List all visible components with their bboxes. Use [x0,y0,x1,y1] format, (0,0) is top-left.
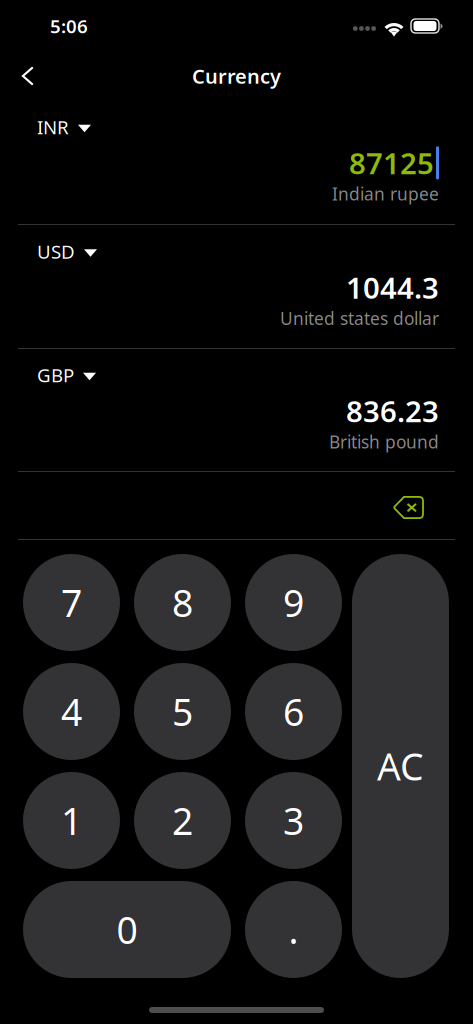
staticText: 0 [116,905,137,954]
button[interactable]: . [245,881,342,978]
button[interactable]: INR [31,111,97,143]
staticText: Indian rupee [332,182,439,205]
staticText: Currency [192,63,281,89]
staticText: 87125 [349,143,434,182]
staticText: 5 [172,687,193,736]
staticText: GBP [37,363,74,387]
staticText: 7 [61,578,82,627]
staticText: 5:06 [50,14,88,38]
staticText: USD [37,239,75,264]
button[interactable]: GBP [31,359,102,391]
staticText: INR [37,115,69,139]
button[interactable]: 5 [134,663,231,760]
staticText: 9 [283,578,304,627]
button[interactable]: 2 [134,772,231,869]
button[interactable]: 0 [23,881,231,978]
staticText: United states dollar [280,307,439,330]
button[interactable]: 8 [134,554,231,651]
staticText: 2 [172,796,193,845]
button[interactable]: Delete [383,485,434,529]
staticText: 3 [283,796,304,845]
staticText: 8 [172,578,193,627]
button[interactable]: 9 [245,554,342,651]
button[interactable]: 6 [245,663,342,760]
button[interactable]: 3 [245,772,342,869]
staticText: 836.23 [346,391,439,430]
staticText: 6 [283,687,304,736]
button[interactable]: Back [5,54,49,98]
button[interactable]: 4 [23,663,120,760]
button[interactable]: USD [31,235,103,268]
button[interactable]: 7 [23,554,120,651]
button[interactable]: 1 [23,772,120,869]
staticText: British pound [329,430,439,453]
staticText: . [288,905,298,954]
staticText: 1044.3 [346,268,439,307]
button[interactable]: AC [352,554,449,978]
staticText: 1 [61,796,82,845]
staticText: 4 [61,687,82,736]
staticText: AC [377,741,424,791]
